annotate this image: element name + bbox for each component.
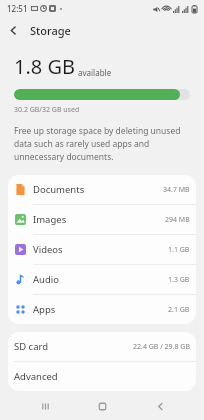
staticText: Storage bbox=[30, 23, 71, 38]
button[interactable]: Audio bbox=[8, 264, 196, 294]
button[interactable]: Recents bbox=[32, 393, 58, 419]
staticText: Advanced bbox=[14, 370, 58, 383]
staticText: Apps bbox=[33, 303, 168, 316]
button[interactable]: Documents bbox=[8, 175, 196, 204]
button[interactable]: Back bbox=[0, 17, 26, 43]
staticText: Images bbox=[33, 213, 165, 226]
staticText: SD card bbox=[14, 340, 133, 353]
staticText: 294 MB bbox=[165, 215, 190, 225]
button[interactable]: Apps bbox=[8, 294, 196, 324]
staticText: available bbox=[78, 67, 112, 78]
staticText: Documents bbox=[33, 183, 163, 196]
staticText: 22.4 GB / 29.8 GB bbox=[133, 342, 190, 352]
staticText: 34.7 MB bbox=[163, 185, 190, 195]
staticText: 1.8 GB bbox=[14, 53, 75, 80]
button[interactable]: Home bbox=[89, 393, 115, 419]
button[interactable]: Videos bbox=[8, 234, 196, 264]
staticText: 12:51 bbox=[7, 3, 28, 14]
button[interactable]: Back bbox=[147, 393, 173, 419]
staticText: 30.2 GB/32 GB used bbox=[14, 105, 80, 115]
staticText: Videos bbox=[33, 243, 168, 256]
button[interactable]: Advanced bbox=[8, 362, 196, 391]
staticText: Audio bbox=[33, 273, 168, 286]
button[interactable]: SD card bbox=[8, 332, 196, 361]
button[interactable]: Images bbox=[8, 204, 196, 234]
staticText: 1.3 GB bbox=[168, 275, 190, 285]
staticText: 1.1 GB bbox=[168, 245, 190, 255]
staticText: 2.1 GB bbox=[168, 305, 190, 315]
staticText: Free up storage space by deleting unused… bbox=[14, 125, 190, 163]
